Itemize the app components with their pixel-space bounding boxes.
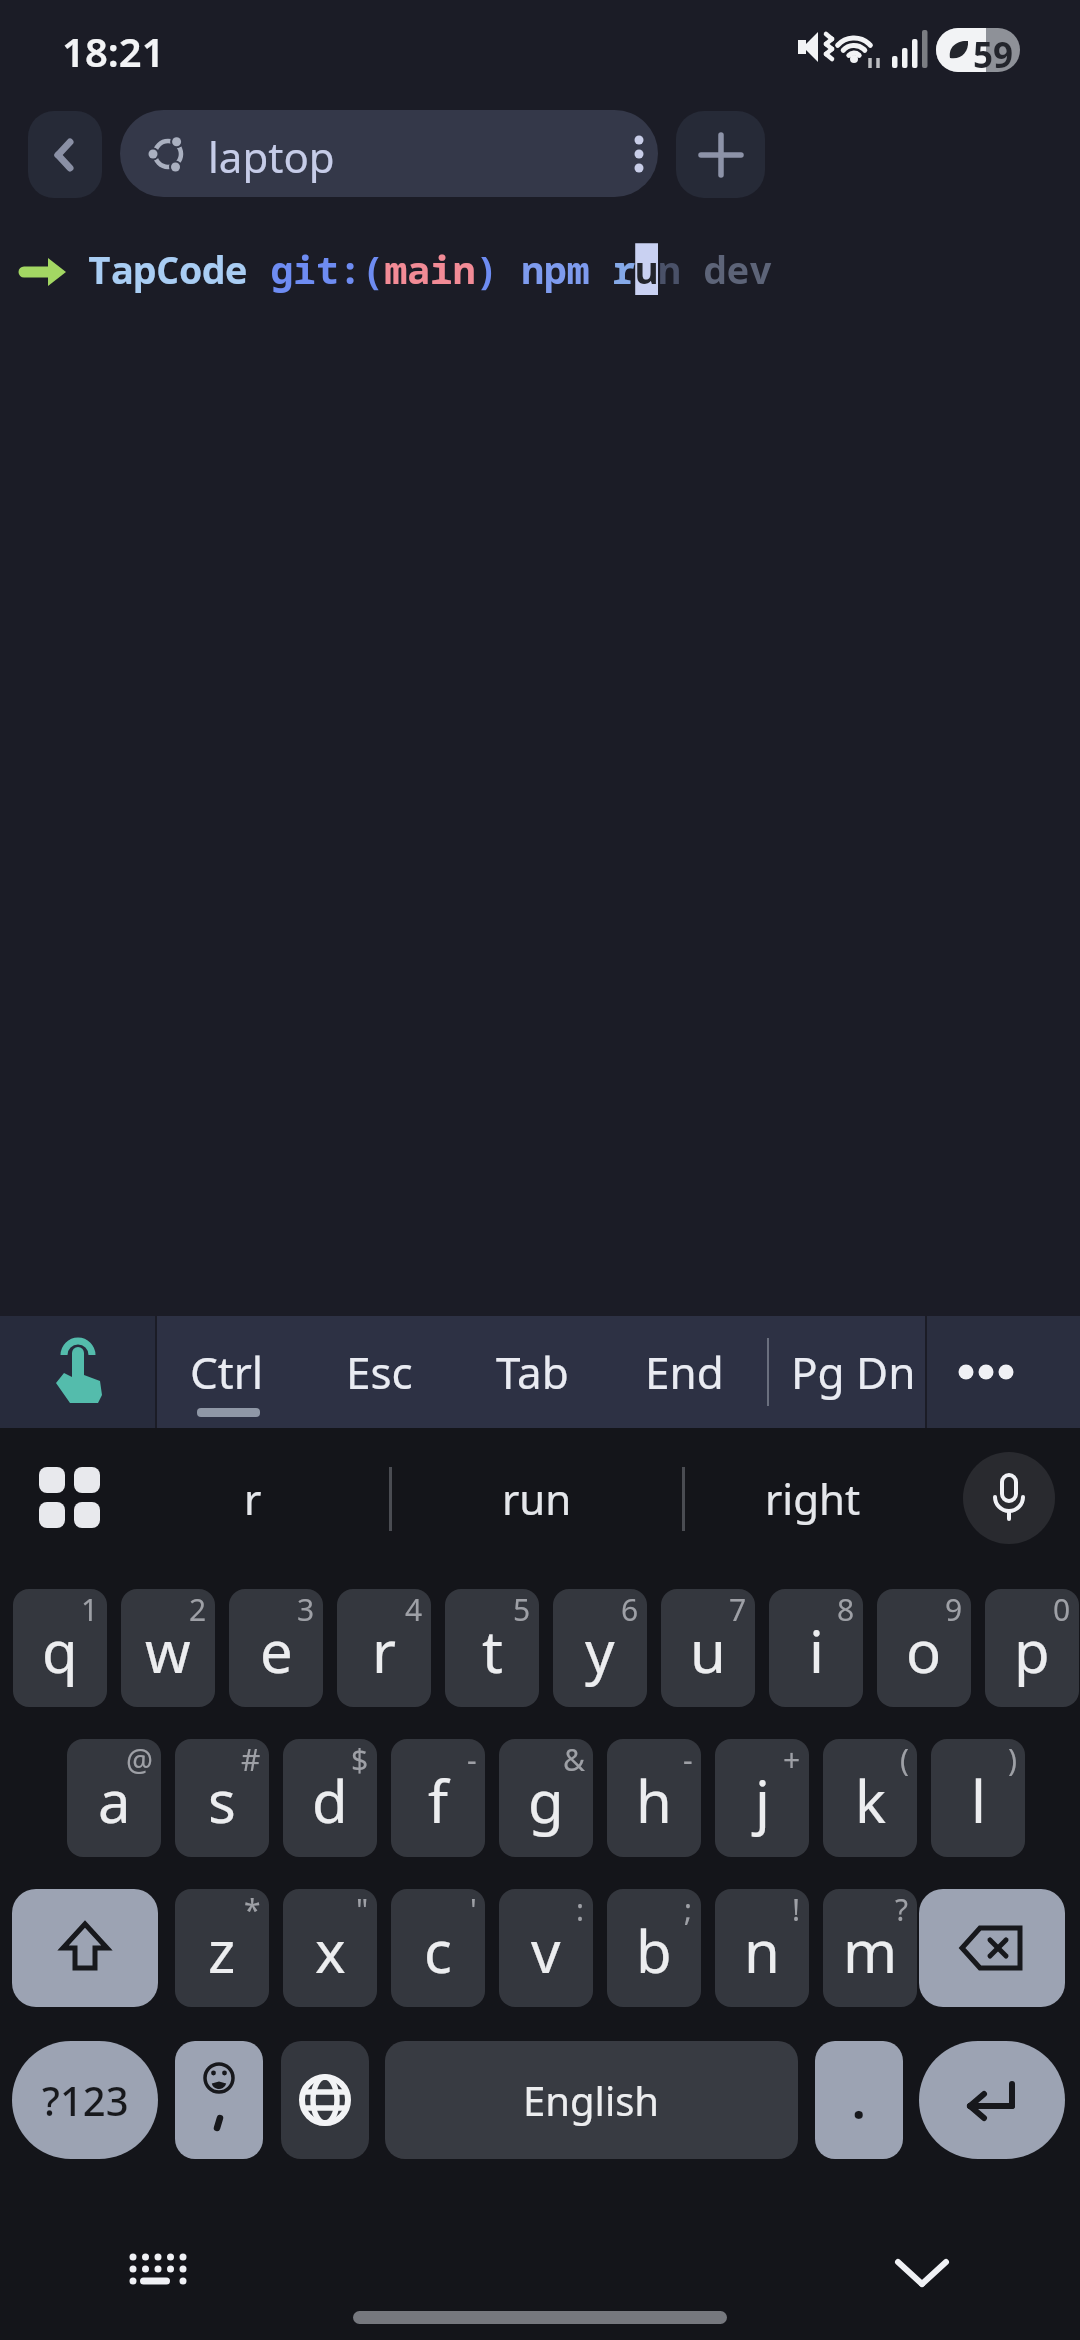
staticText: z bbox=[208, 1911, 236, 1990]
staticText: f bbox=[428, 1761, 448, 1840]
button[interactable]: f bbox=[391, 1739, 485, 1857]
button[interactable]: j bbox=[715, 1739, 809, 1857]
button[interactable]: laptop bbox=[120, 110, 658, 197]
staticText: 1 bbox=[81, 1589, 99, 1630]
staticText: right bbox=[765, 1470, 861, 1527]
button[interactable]: s bbox=[175, 1739, 269, 1857]
button[interactable]: q bbox=[13, 1589, 107, 1707]
button[interactable]: r bbox=[116, 1452, 389, 1544]
staticText: ? bbox=[895, 1889, 909, 1930]
button[interactable]: e bbox=[229, 1589, 323, 1707]
button[interactable]: w bbox=[121, 1589, 215, 1707]
button[interactable]: run bbox=[392, 1452, 681, 1544]
staticText: u bbox=[690, 1611, 726, 1690]
staticText: y bbox=[585, 1611, 615, 1690]
staticText: v bbox=[531, 1911, 561, 1990]
button[interactable]: x bbox=[283, 1889, 377, 2007]
button[interactable]: End bbox=[612, 1316, 757, 1428]
staticText: - bbox=[467, 1739, 477, 1780]
staticText: c bbox=[424, 1911, 452, 1990]
button[interactable]: k bbox=[823, 1739, 917, 1857]
button[interactable]: g bbox=[499, 1739, 593, 1857]
staticText: ' bbox=[470, 1889, 477, 1930]
button[interactable]: i bbox=[769, 1589, 863, 1707]
staticText: Tab bbox=[496, 1342, 569, 1402]
button[interactable] bbox=[24, 1452, 116, 1544]
button[interactable]: c bbox=[391, 1889, 485, 2007]
staticText: i bbox=[809, 1611, 824, 1690]
button[interactable]: p bbox=[985, 1589, 1079, 1707]
staticText: $ bbox=[351, 1739, 369, 1780]
staticText: d bbox=[312, 1761, 348, 1840]
staticText: ( bbox=[900, 1739, 909, 1780]
button[interactable]: b bbox=[607, 1889, 701, 2007]
button[interactable]: ?123 bbox=[12, 2041, 158, 2159]
staticText: # bbox=[241, 1739, 261, 1780]
button[interactable]: d bbox=[283, 1739, 377, 1857]
staticText: r bbox=[372, 1611, 396, 1690]
button[interactable]: Tab bbox=[462, 1316, 602, 1428]
staticText: j bbox=[755, 1761, 770, 1840]
staticText: 18:21 bbox=[62, 24, 165, 78]
button[interactable] bbox=[12, 1889, 158, 2007]
button[interactable] bbox=[28, 111, 102, 198]
staticText: 59 bbox=[973, 31, 1014, 79]
button[interactable] bbox=[0, 1316, 155, 1428]
staticText: 3 bbox=[297, 1589, 315, 1630]
staticText: 7 bbox=[729, 1589, 747, 1630]
button[interactable]: t bbox=[445, 1589, 539, 1707]
staticText: q bbox=[42, 1611, 78, 1690]
staticText: 9 bbox=[945, 1589, 963, 1630]
button[interactable] bbox=[919, 1889, 1065, 2007]
button[interactable]: . bbox=[815, 2041, 903, 2159]
staticText: g bbox=[528, 1761, 564, 1840]
staticText: ) bbox=[1008, 1739, 1017, 1780]
button[interactable]: o bbox=[877, 1589, 971, 1707]
staticText: 2 bbox=[189, 1589, 207, 1630]
button[interactable]: y bbox=[553, 1589, 647, 1707]
staticText: run bbox=[502, 1470, 572, 1527]
button[interactable] bbox=[619, 134, 658, 174]
staticText: k bbox=[855, 1761, 886, 1840]
staticText: + bbox=[783, 1739, 801, 1780]
staticText: r bbox=[244, 1470, 262, 1527]
button[interactable]: u bbox=[661, 1589, 755, 1707]
button[interactable] bbox=[175, 2041, 263, 2159]
staticText: 0 bbox=[1053, 1589, 1071, 1630]
button[interactable]: Esc bbox=[307, 1316, 452, 1428]
button[interactable]: r bbox=[337, 1589, 431, 1707]
staticText: ; bbox=[684, 1889, 693, 1930]
button[interactable] bbox=[927, 1316, 1080, 1428]
staticText: ! bbox=[792, 1889, 801, 1930]
staticText: m bbox=[843, 1911, 898, 1990]
staticText: Ctrl bbox=[190, 1342, 264, 1402]
staticText: & bbox=[563, 1739, 585, 1780]
staticText: 6 bbox=[621, 1589, 639, 1630]
button[interactable] bbox=[676, 111, 765, 198]
staticText: . bbox=[852, 2068, 866, 2133]
button[interactable]: a bbox=[67, 1739, 161, 1857]
button[interactable]: l bbox=[931, 1739, 1025, 1857]
button[interactable] bbox=[281, 2041, 369, 2159]
staticText: Pg Dn bbox=[791, 1342, 916, 1402]
staticText: - bbox=[683, 1739, 693, 1780]
button[interactable]: right bbox=[685, 1452, 941, 1544]
button[interactable]: h bbox=[607, 1739, 701, 1857]
button[interactable]: English bbox=[385, 2041, 798, 2159]
staticText: o bbox=[906, 1611, 942, 1690]
button[interactable] bbox=[963, 1452, 1055, 1544]
button[interactable]: Ctrl bbox=[157, 1316, 297, 1428]
button[interactable]: m bbox=[823, 1889, 917, 2007]
button[interactable] bbox=[919, 2041, 1065, 2159]
staticText: l bbox=[971, 1761, 986, 1840]
staticText: ?123 bbox=[42, 2073, 129, 2127]
button[interactable] bbox=[110, 2238, 206, 2308]
button[interactable]: Pg Dn bbox=[782, 1316, 925, 1428]
staticText: x bbox=[315, 1911, 346, 1990]
button[interactable] bbox=[870, 2230, 974, 2316]
staticText: : bbox=[576, 1889, 585, 1930]
staticText: s bbox=[208, 1761, 236, 1840]
button[interactable]: n bbox=[715, 1889, 809, 2007]
button[interactable]: v bbox=[499, 1889, 593, 2007]
button[interactable]: z bbox=[175, 1889, 269, 2007]
